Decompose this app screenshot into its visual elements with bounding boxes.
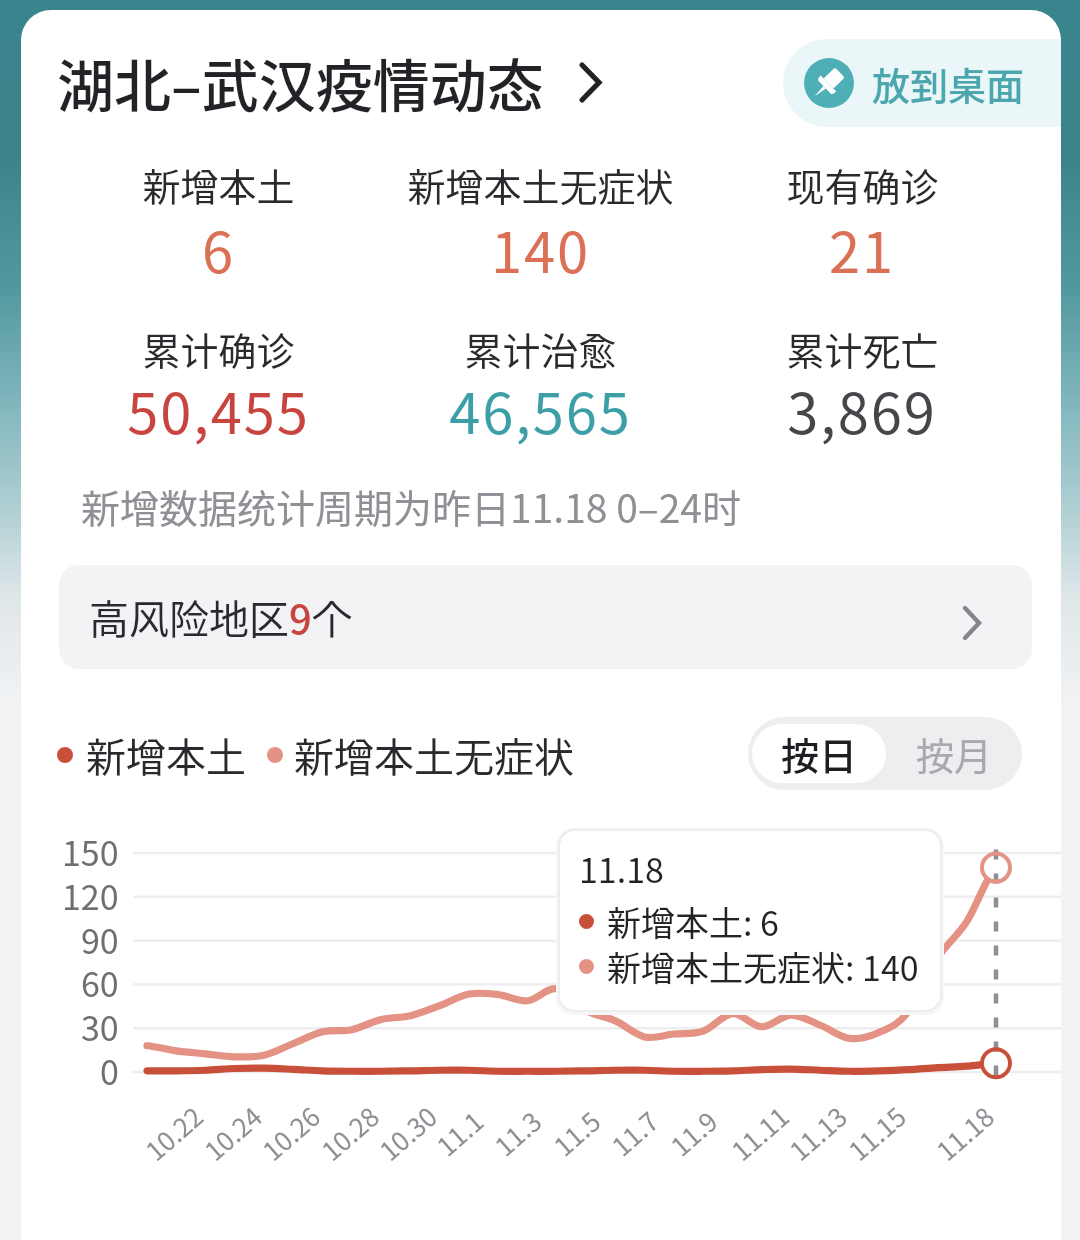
staticText: 累计死亡 [786,321,939,376]
staticText: 11.9 [662,1102,725,1164]
staticText: 按日 [781,726,858,781]
staticText: 150 [62,827,119,876]
staticText: 11.3 [486,1102,549,1164]
staticText: 11.18 [579,844,664,893]
staticText: 新增本土无症状 [407,157,674,212]
staticText: 0 [100,1046,119,1095]
staticText: 30 [81,1002,119,1051]
staticText: 新增本土 [86,726,246,784]
staticText: 高风险地区 [89,588,289,646]
staticText: 现有确诊 [786,157,939,212]
staticText: 140 [491,208,590,289]
staticText: 50,455 [127,369,310,450]
staticText: 60 [81,958,119,1007]
staticText: 10.22 [136,1097,210,1169]
staticText: 11.15 [839,1097,913,1169]
button[interactable]: 高风险地区 [59,565,1032,669]
staticText: 累计确诊 [142,321,295,376]
button[interactable]: 湖北–武汉疫情动态 [57,41,601,124]
staticText: 11.11 [722,1097,796,1169]
staticText: 11.18 [927,1097,1001,1169]
staticText: 湖北–武汉疫情动态 [57,41,544,124]
staticText: 10.24 [195,1097,269,1169]
staticText: 10.26 [253,1097,327,1169]
staticText: 21 [829,208,895,289]
staticText: 46,565 [449,369,632,450]
staticText: 10.28 [312,1097,386,1169]
staticText: 11.1 [428,1102,491,1164]
staticText: 新增本土: 6 [607,897,779,946]
staticText: 9 [289,588,312,646]
staticText: 累计治愈 [464,321,617,376]
staticText: 120 [62,871,119,920]
staticText: 3,869 [787,369,937,450]
staticText: 11.7 [603,1102,666,1164]
button[interactable]: 按月 [890,724,1018,783]
staticText: 按月 [916,726,993,781]
staticText: 新增本土无症状: 140 [607,942,919,991]
staticText: 6 [202,208,235,289]
button[interactable]: 按日 [752,724,886,783]
staticText: 放到桌面 [872,56,1025,111]
staticText: 新增本土 [142,157,295,212]
staticText: 新增数据统计周期为昨日11.18 0–24时 [81,478,741,534]
staticText: 个 [312,588,352,646]
staticText: 10.30 [370,1097,444,1169]
staticText: 新增本土无症状 [294,726,574,784]
button[interactable]: 放到桌面 [783,39,1061,127]
staticText: 90 [81,915,119,964]
staticText: 11.13 [780,1097,854,1169]
staticText: 11.5 [545,1102,608,1164]
